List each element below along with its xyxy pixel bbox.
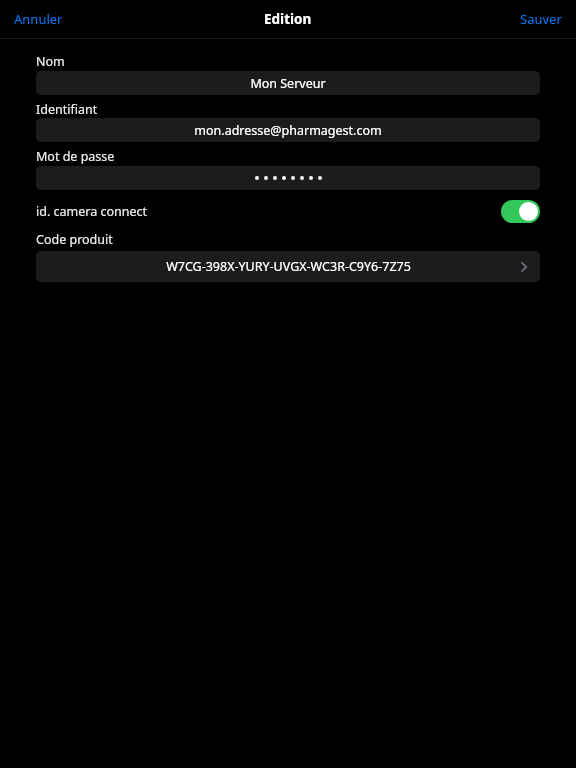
button[interactable]: id. camera connect <box>501 200 540 223</box>
staticText: Sauver <box>520 10 562 28</box>
staticText: Code produit <box>36 231 113 248</box>
staticText: mon.adresse@pharmagest.com <box>194 122 382 139</box>
button[interactable]: Sauver <box>512 4 570 34</box>
button[interactable]: W7CG-398X-YURY-UVGX-WC3R-C9Y6-7Z75 <box>36 251 540 282</box>
button[interactable]: Mon Serveur <box>36 71 540 95</box>
staticText: Nom <box>36 53 65 70</box>
staticText: id. camera connect <box>36 203 148 220</box>
staticText: Mot de passe <box>36 148 115 165</box>
button[interactable]: Mot de passe <box>36 166 540 190</box>
button[interactable]: Annuler <box>6 4 71 34</box>
staticText: Mon Serveur <box>250 75 326 92</box>
button[interactable]: mon.adresse@pharmagest.com <box>36 118 540 142</box>
staticText: Annuler <box>14 10 63 28</box>
button[interactable]: id. camera connect <box>0 196 576 227</box>
staticText: Identifiant <box>36 101 98 118</box>
staticText: Edition <box>264 10 312 28</box>
staticText: W7CG-398X-YURY-UVGX-WC3R-C9Y6-7Z75 <box>166 258 411 275</box>
